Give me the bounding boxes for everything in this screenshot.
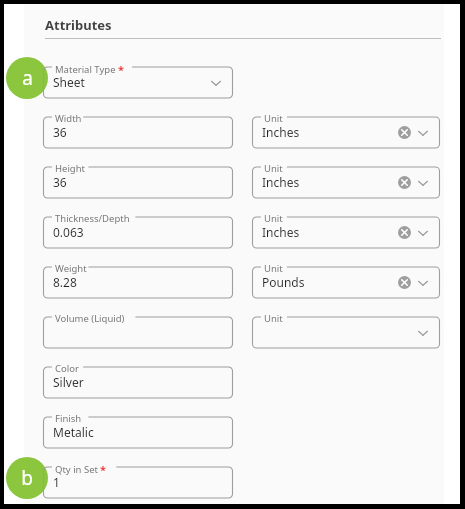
- staticText: 1: [53, 474, 60, 490]
- staticText: b: [21, 465, 33, 491]
- staticText: *: [118, 62, 124, 77]
- staticText: a: [22, 65, 33, 91]
- button[interactable]: Open dropdown: [209, 76, 223, 90]
- button[interactable]: Volume (Liquid): [43, 312, 233, 353]
- button[interactable]: Callout b: [6, 457, 48, 499]
- staticText: *: [100, 462, 106, 477]
- staticText: Weight: [55, 262, 87, 275]
- button[interactable]: Clear: [398, 176, 411, 189]
- staticText: Thickness/Depth: [55, 212, 130, 225]
- button[interactable]: Open dropdown: [416, 226, 430, 240]
- staticText: Unit: [264, 112, 283, 125]
- staticText: Inches: [262, 124, 300, 140]
- button[interactable]: Open dropdown: [416, 176, 430, 190]
- staticText: Attributes: [45, 16, 112, 34]
- button[interactable]: Callout a: [6, 57, 48, 99]
- staticText: Inches: [262, 174, 300, 190]
- staticText: 0.063: [53, 224, 84, 240]
- staticText: Qty in Set: [55, 463, 98, 476]
- staticText: Unit: [264, 262, 283, 275]
- staticText: Finish: [55, 412, 82, 425]
- button[interactable]: Material Type: [43, 62, 233, 103]
- button[interactable]: Weight: [43, 262, 233, 303]
- button[interactable]: Open dropdown: [416, 276, 430, 290]
- button[interactable]: Width: [43, 112, 233, 153]
- staticText: Width: [55, 112, 82, 125]
- button[interactable]: Unit: [252, 262, 440, 303]
- button[interactable]: Clear: [398, 226, 411, 239]
- button[interactable]: Thickness/Depth: [43, 212, 233, 253]
- button[interactable]: Color: [43, 362, 233, 403]
- staticText: Material Type: [55, 63, 116, 76]
- staticText: Unit: [264, 212, 283, 225]
- staticText: 36: [53, 174, 67, 190]
- staticText: Color: [55, 362, 79, 375]
- staticText: Sheet: [53, 74, 85, 90]
- button[interactable]: Clear: [398, 126, 411, 139]
- button[interactable]: Unit: [252, 162, 440, 203]
- staticText: Unit: [264, 162, 283, 175]
- button[interactable]: Clear: [398, 276, 411, 289]
- staticText: Inches: [262, 224, 300, 240]
- staticText: Metalic: [53, 424, 94, 440]
- button[interactable]: Open dropdown: [416, 326, 430, 340]
- button[interactable]: Finish: [43, 412, 233, 453]
- staticText: Silver: [53, 374, 84, 390]
- staticText: Height: [55, 162, 85, 175]
- staticText: Pounds: [262, 274, 305, 290]
- button[interactable]: Unit: [252, 112, 440, 153]
- button[interactable]: Open dropdown: [416, 126, 430, 140]
- button[interactable]: Qty in Set: [43, 462, 233, 503]
- button[interactable]: Unit: [252, 312, 440, 353]
- button[interactable]: Unit: [252, 212, 440, 253]
- staticText: Unit: [264, 312, 283, 325]
- staticText: Volume (Liquid): [55, 312, 125, 325]
- button[interactable]: Height: [43, 162, 233, 203]
- staticText: 36: [53, 124, 67, 140]
- staticText: 8.28: [53, 274, 77, 290]
